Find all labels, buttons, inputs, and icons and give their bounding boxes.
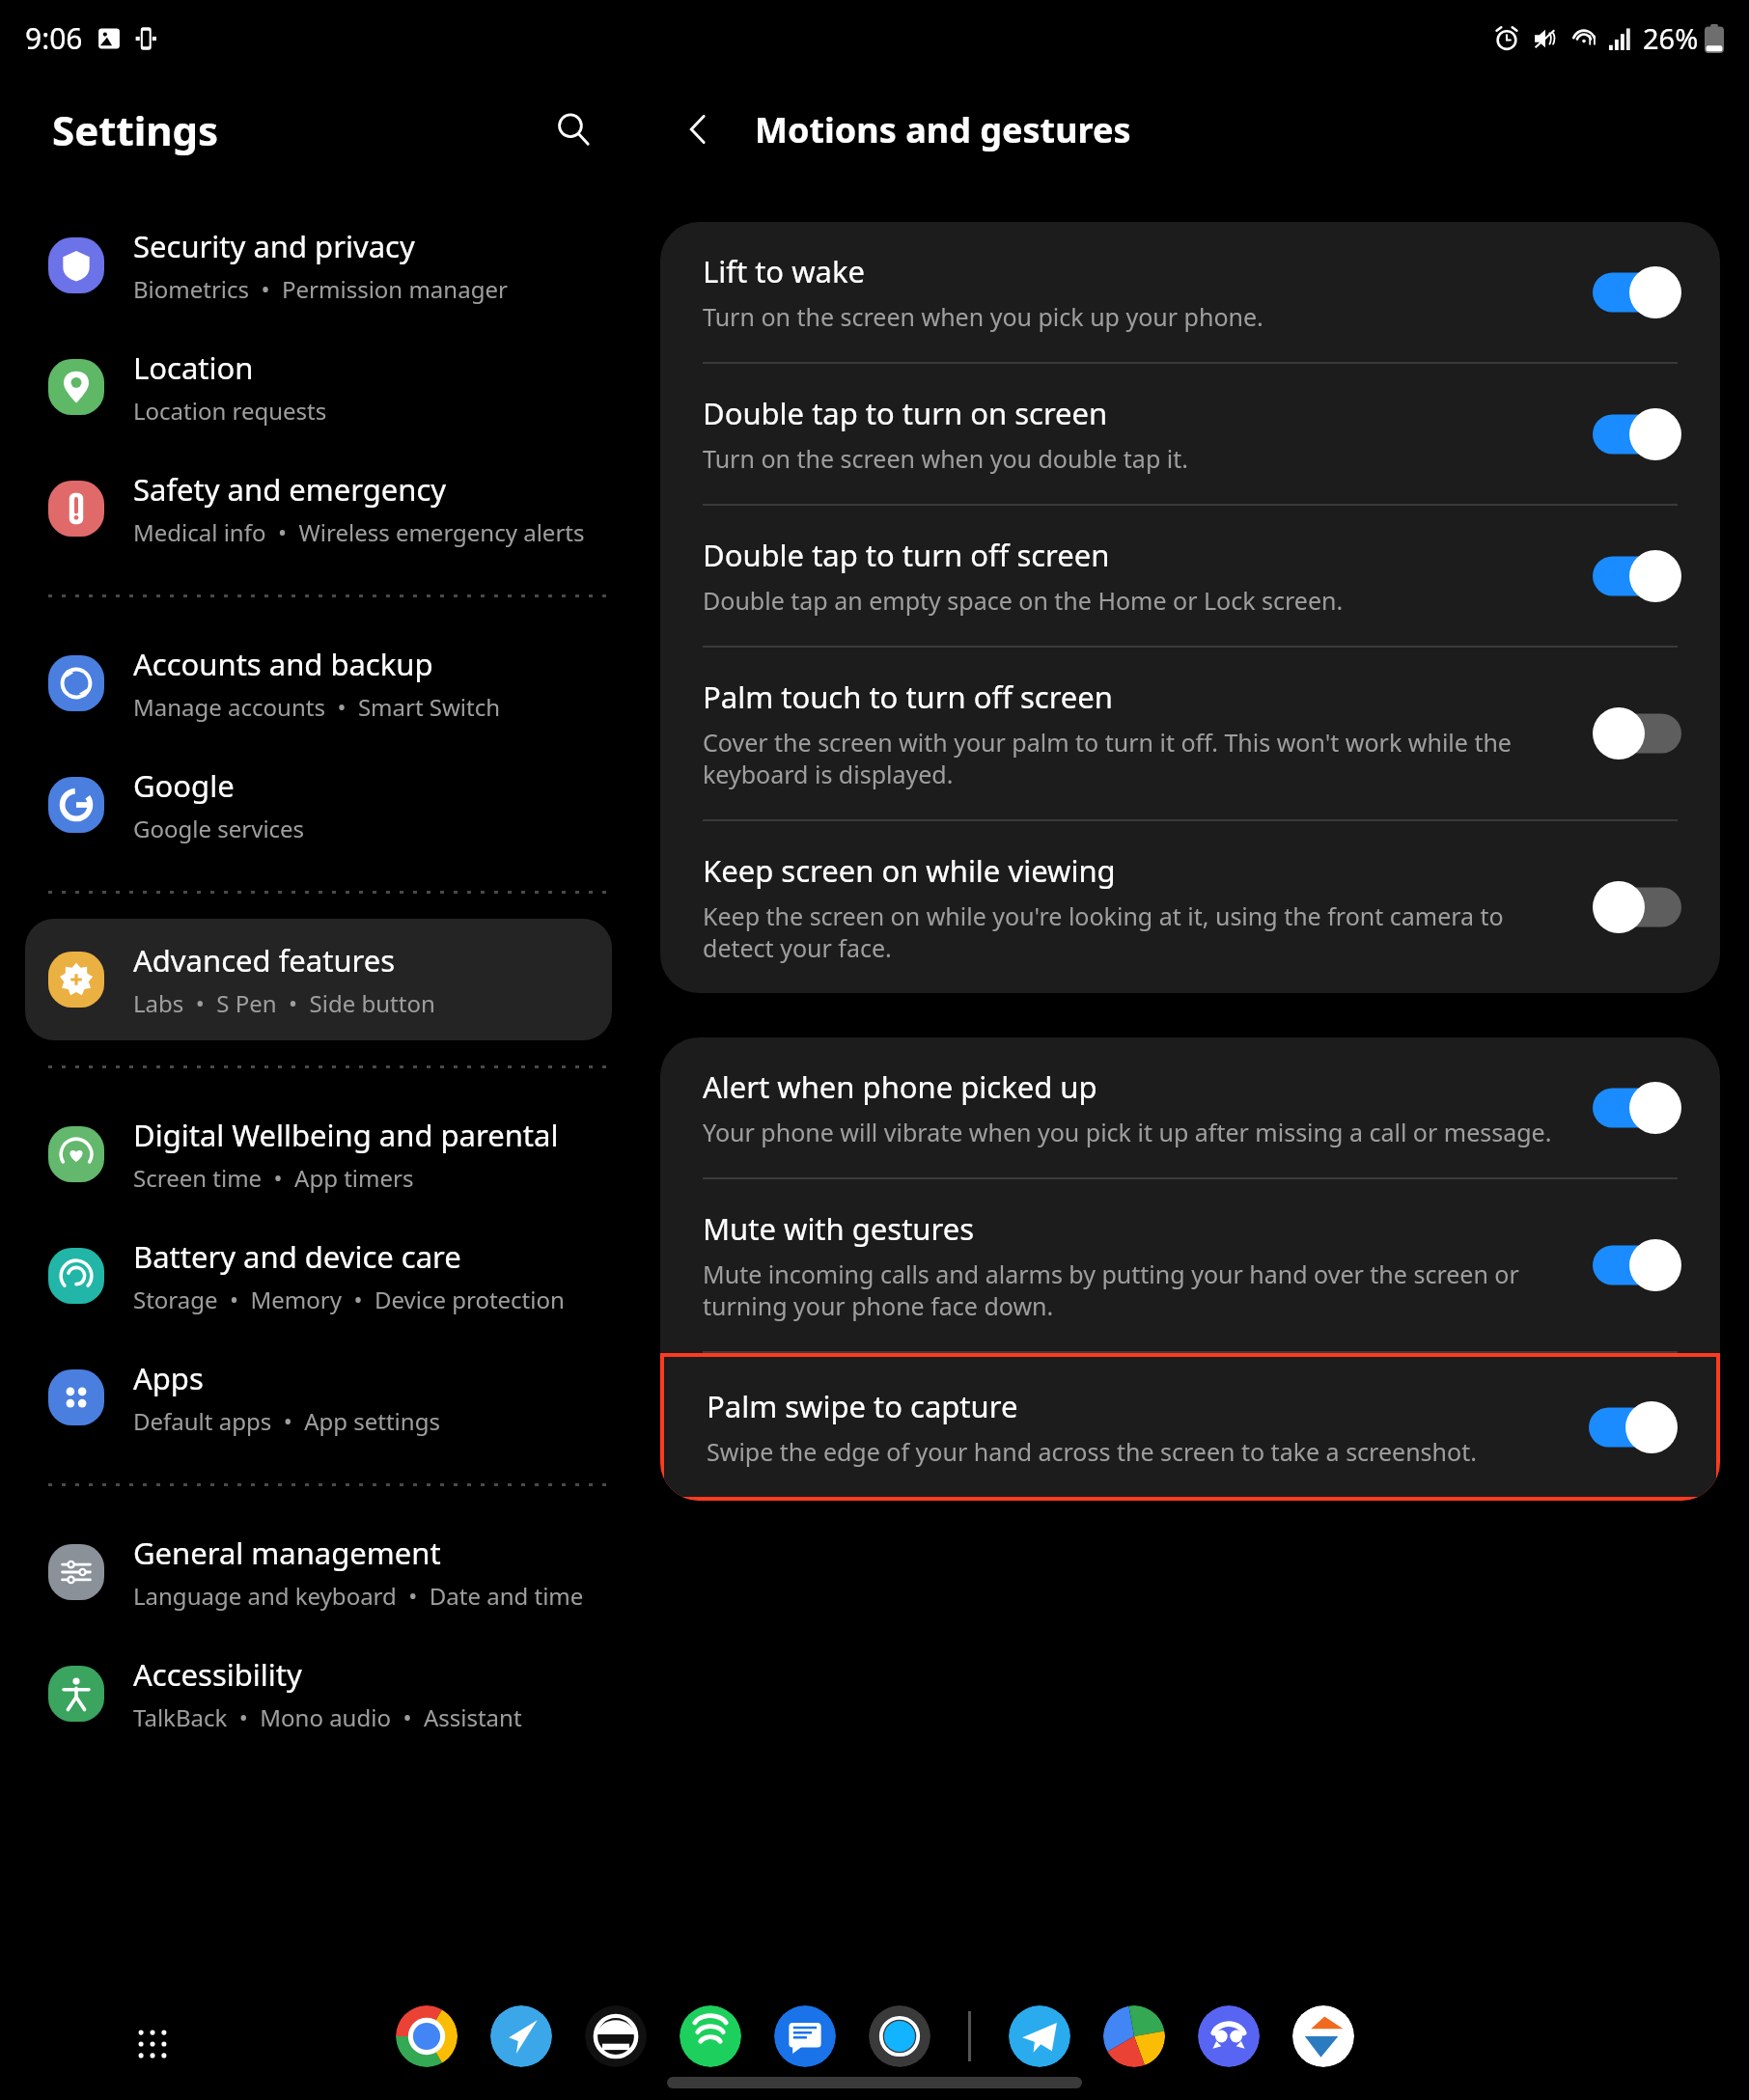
staticText: Motions and gestures	[755, 106, 1131, 153]
button[interactable]: Double tap to turn off screen	[660, 506, 1720, 646]
staticText: Keep screen on while viewing	[703, 850, 1116, 891]
button[interactable]: Apps	[25, 1337, 612, 1458]
staticText: Your phone will vibrate when you pick it…	[703, 1116, 1552, 1148]
staticText: Palm swipe to capture	[707, 1386, 1018, 1426]
staticText: Lift to wake	[703, 251, 865, 291]
staticText: Mute with gestures	[703, 1208, 975, 1249]
staticText: 9:06	[25, 18, 83, 58]
button[interactable]: discord	[1198, 2005, 1260, 2067]
staticText: Turn on the screen when you pick up your…	[703, 300, 1263, 333]
staticText: Double tap to turn on screen	[703, 393, 1108, 433]
button[interactable]: Accounts and backup	[25, 622, 612, 744]
button[interactable]: Lift to wake	[660, 222, 1720, 362]
staticText: Mute incoming calls and alarms by puttin…	[703, 1257, 1569, 1322]
staticText: General management	[133, 1533, 441, 1573]
staticText: Cover the screen with your palm to turn …	[703, 726, 1569, 790]
staticText: Manage accounts • Smart Switch	[133, 691, 501, 723]
button[interactable]: Mute with gestures	[660, 1179, 1720, 1351]
staticText: Default apps • App settings	[133, 1405, 440, 1437]
staticText: 26%	[1643, 19, 1699, 57]
staticText: Apps	[133, 1358, 204, 1398]
staticText: Swipe the edge of your hand across the s…	[707, 1435, 1477, 1468]
staticText: Location requests	[133, 395, 327, 427]
button[interactable]: All apps	[124, 2015, 181, 2073]
staticText: Language and keyboard • Date and time	[133, 1580, 584, 1612]
button[interactable]: spark	[490, 2005, 552, 2067]
button[interactable]: bereal	[585, 2005, 647, 2067]
button[interactable]: Advanced features	[25, 919, 612, 1040]
staticText: Keep the screen on while you're looking …	[703, 899, 1569, 964]
button[interactable]: Digital Wellbeing and parental controls	[25, 1093, 612, 1215]
button[interactable]: Palm swipe to capture	[664, 1357, 1716, 1497]
staticText: Accounts and backup	[133, 644, 433, 684]
staticText: Screen time • App timers	[133, 1162, 414, 1194]
button[interactable]: telegram	[1009, 2005, 1070, 2067]
button[interactable]: Alert when phone picked up	[660, 1037, 1720, 1177]
staticText: Digital Wellbeing and parental controls	[133, 1115, 589, 1155]
button[interactable]: Palm touch to turn off screen	[660, 648, 1720, 819]
button[interactable]: play	[1103, 2005, 1165, 2067]
button[interactable]: Keep screen on while viewing	[660, 821, 1720, 993]
staticText: Medical info • Wireless emergency alerts	[133, 516, 585, 548]
staticText: TalkBack • Mono audio • Assistant menu	[133, 1701, 589, 1733]
staticText: Accessibility	[133, 1654, 302, 1695]
staticText: Advanced features	[133, 940, 396, 981]
button[interactable]: messages	[774, 2005, 836, 2067]
button[interactable]: General management	[25, 1511, 612, 1633]
button[interactable]: Back	[666, 97, 730, 161]
staticText: Storage • Memory • Device protection	[133, 1284, 565, 1315]
button[interactable]: at	[1292, 2005, 1354, 2067]
staticText: Google	[133, 765, 235, 806]
staticText: Double tap an empty space on the Home or…	[703, 584, 1344, 617]
staticText: Location	[133, 347, 254, 388]
button[interactable]: Safety and emergency	[25, 448, 612, 569]
staticText: Safety and emergency	[133, 469, 447, 510]
staticText: Double tap to turn off screen	[703, 535, 1110, 575]
button[interactable]: oneui	[869, 2005, 930, 2067]
staticText: Battery and device care	[133, 1236, 461, 1277]
button[interactable]: Google	[25, 744, 612, 866]
staticText: Settings	[52, 102, 219, 157]
button[interactable]: Double tap to turn on screen	[660, 364, 1720, 504]
button[interactable]: Search	[542, 98, 604, 160]
button[interactable]: spotify	[680, 2005, 741, 2067]
staticText: Palm touch to turn off screen	[703, 677, 1113, 717]
button[interactable]: Location	[25, 326, 612, 448]
button[interactable]: Accessibility	[25, 1633, 612, 1755]
staticText: Google services	[133, 813, 305, 844]
staticText: Turn on the screen when you double tap i…	[703, 442, 1188, 475]
button[interactable]: chrome	[396, 2005, 458, 2067]
button[interactable]: Security and privacy	[25, 205, 612, 326]
staticText: Security and privacy	[133, 226, 415, 266]
button[interactable]: Battery and device care	[25, 1215, 612, 1337]
staticText: Alert when phone picked up	[703, 1066, 1097, 1107]
staticText: Biometrics • Permission manager	[133, 273, 508, 305]
staticText: Labs • S Pen • Side button	[133, 987, 435, 1019]
